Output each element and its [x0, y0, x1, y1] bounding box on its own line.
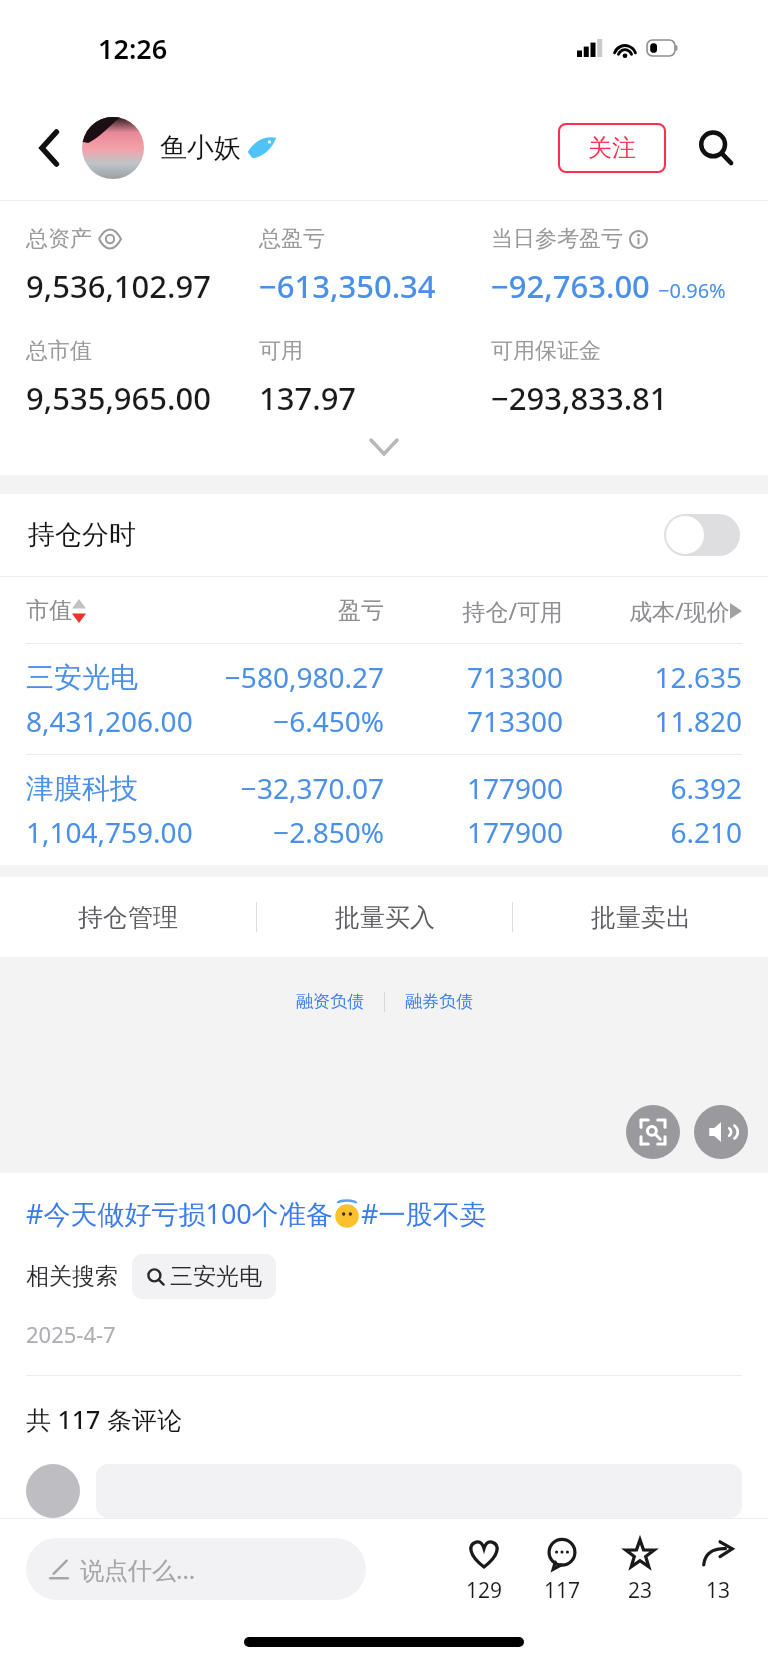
staticText: 总市值	[26, 337, 92, 365]
staticText: 持仓管理	[78, 902, 178, 933]
button[interactable]: Expand	[371, 440, 397, 454]
staticText: 市值	[26, 596, 72, 625]
button[interactable]: 说点什么...	[26, 1538, 366, 1600]
staticText: 三安光电	[26, 660, 205, 695]
button[interactable]: 鱼小妖	[160, 131, 241, 165]
staticText: 2025-4-7	[26, 1319, 116, 1349]
button[interactable]: 批量卖出	[513, 877, 768, 957]
staticText: −293,833.81	[491, 377, 668, 419]
button[interactable]: Toggle visibility	[99, 231, 121, 247]
staticText: #一股不卖	[361, 1195, 487, 1232]
staticText: 成本/现价	[629, 595, 730, 626]
staticText: 1,104,759.00	[26, 813, 205, 851]
button[interactable]: Read aloud	[694, 1105, 748, 1159]
staticText: 13	[706, 1576, 731, 1605]
staticText: −613,350.34	[259, 265, 436, 307]
staticText: 批量买入	[335, 902, 435, 933]
staticText: 12.635	[563, 658, 742, 696]
staticText: 相关搜索	[26, 1262, 118, 1291]
staticText: 713300	[384, 658, 563, 696]
staticText: 713300	[384, 702, 563, 740]
staticText: 当日参考盈亏	[491, 225, 623, 253]
button[interactable]: Search	[692, 124, 740, 172]
button[interactable]: Toggle intraday	[664, 514, 740, 556]
staticText: 12:26	[98, 30, 168, 67]
staticText: −0.96%	[658, 277, 726, 304]
button[interactable]: 融券负债	[401, 991, 477, 1012]
button[interactable]: 三安光电	[0, 644, 768, 754]
button[interactable]: Info	[629, 230, 648, 249]
staticText: 8,431,206.00	[26, 702, 205, 740]
staticText: 可用保证金	[491, 337, 601, 365]
staticText: 关注	[588, 133, 636, 163]
staticText: 177900	[384, 769, 563, 807]
button[interactable]: 融资负债	[292, 991, 368, 1012]
staticText: −32,370.07	[205, 769, 384, 807]
button[interactable]: 津膜科技	[0, 755, 768, 865]
button[interactable]: 持仓管理	[0, 877, 256, 957]
button[interactable]: Share	[694, 1534, 742, 1605]
staticText: 177900	[384, 813, 563, 851]
staticText: 持仓分时	[28, 518, 136, 552]
button[interactable]: 关注	[558, 123, 666, 173]
button[interactable]: #今天做好亏损100个准备	[26, 1195, 487, 1232]
staticText: 可用	[259, 337, 303, 365]
staticText: 批量卖出	[591, 902, 691, 933]
button[interactable]	[82, 117, 144, 179]
button[interactable]: Scan	[626, 1105, 680, 1159]
button[interactable]: Comments	[538, 1534, 586, 1605]
button[interactable]: 批量买入	[257, 877, 512, 957]
staticText: 津膜科技	[26, 771, 205, 806]
staticText: 9,535,965.00	[26, 377, 211, 419]
staticText: 129	[466, 1576, 503, 1605]
staticText: 持仓/可用	[384, 595, 563, 626]
staticText: −6.450%	[205, 702, 384, 740]
staticText: 总盈亏	[259, 225, 325, 253]
staticText: 9,536,102.97	[26, 265, 211, 307]
button[interactable]: 三安光电	[132, 1254, 276, 1299]
staticText: 盈亏	[205, 596, 384, 625]
staticText: 共 117 条评论	[26, 1402, 182, 1436]
button[interactable]: Back	[28, 126, 72, 170]
staticText: −2.850%	[205, 813, 384, 851]
button[interactable]: Like	[460, 1534, 508, 1605]
staticText: 总资产	[26, 225, 92, 253]
staticText: 三安光电	[170, 1262, 262, 1291]
staticText: 23	[628, 1576, 653, 1605]
button[interactable]: Favorite	[616, 1534, 664, 1605]
staticText: 137.97	[259, 377, 357, 419]
staticText: 6.392	[563, 769, 742, 807]
staticText: −92,763.00	[491, 265, 650, 307]
staticText: #今天做好亏损100个准备	[26, 1195, 333, 1232]
staticText: 117	[544, 1576, 581, 1605]
staticText: 11.820	[563, 702, 742, 740]
staticText: 6.210	[563, 813, 742, 851]
staticText: 说点什么...	[80, 1553, 196, 1586]
staticText: −580,980.27	[205, 658, 384, 696]
